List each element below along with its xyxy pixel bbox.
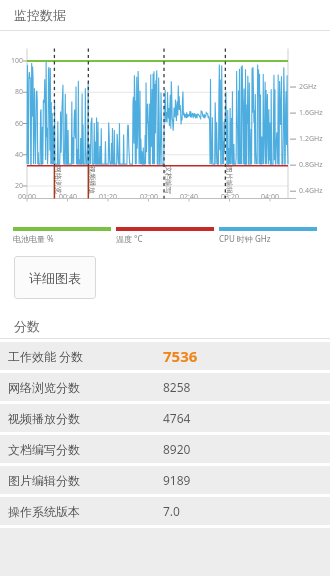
staticText: 8258	[163, 379, 191, 395]
staticText: 详细图表	[29, 270, 81, 286]
staticText: 03:20	[216, 192, 244, 202]
staticText: 图片编辑分数	[8, 473, 163, 488]
staticText: 视频播放	[88, 166, 97, 194]
button[interactable]: 详细图表	[14, 256, 96, 299]
staticText: 8920	[163, 441, 191, 457]
staticText: 文档编写分数	[8, 442, 163, 457]
staticText: 操作系统版本	[8, 504, 163, 519]
staticText: 网络浏览分数	[8, 380, 163, 395]
staticText: 00:40	[54, 192, 82, 202]
staticText: 文档编写	[164, 166, 173, 194]
staticText: 7.0	[163, 503, 180, 519]
staticText: 0.4GHz	[299, 186, 323, 196]
staticText: 监控数据	[14, 7, 66, 23]
staticText: 4764	[163, 410, 191, 426]
staticText: 7536	[163, 346, 198, 366]
staticText: 视频播放分数	[8, 411, 163, 426]
staticText: 20	[1, 181, 23, 191]
staticText: 1.6GHz	[299, 108, 323, 118]
staticText: 100	[1, 56, 23, 66]
staticText: 04:00	[256, 192, 284, 202]
button[interactable]: 工作效能 分数	[0, 342, 330, 370]
button[interactable]: 操作系统版本	[0, 497, 330, 525]
staticText: 60	[1, 119, 23, 129]
button[interactable]: 图片编辑分数	[0, 466, 330, 494]
staticText: 网络浏览	[54, 166, 63, 194]
staticText: 0.8GHz	[299, 160, 323, 170]
staticText: 电池电量 %	[13, 233, 54, 244]
staticText: 00:00	[13, 192, 41, 202]
staticText: 80	[1, 87, 23, 97]
staticText: CPU 时钟 GHz	[219, 233, 271, 244]
staticText: 分数	[14, 318, 40, 334]
staticText: 9189	[163, 472, 191, 488]
staticText: 图片编辑	[225, 166, 234, 194]
button[interactable]: 网络浏览分数	[0, 373, 330, 401]
staticText: 40	[1, 150, 23, 160]
staticText: 02:00	[135, 192, 163, 202]
staticText: 01:20	[94, 192, 122, 202]
staticText: 温度 °C	[116, 233, 143, 244]
staticText: 工作效能 分数	[8, 348, 163, 364]
staticText: 1.2GHz	[299, 134, 323, 144]
button[interactable]: 视频播放分数	[0, 404, 330, 432]
staticText: 2GHz	[299, 82, 317, 92]
button[interactable]: 文档编写分数	[0, 435, 330, 463]
staticText: 02:40	[175, 192, 203, 202]
